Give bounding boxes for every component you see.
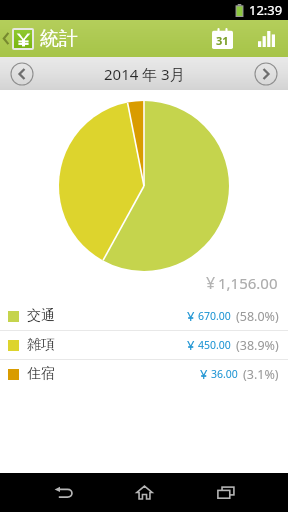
button[interactable]: Previous month	[0, 57, 44, 90]
staticText: (3.1%)	[243, 366, 279, 383]
staticText: 1,156.00	[218, 273, 278, 293]
staticText: 450.00	[198, 338, 231, 352]
button[interactable]: Statistics chart	[244, 20, 288, 57]
staticText: 住宿	[27, 365, 55, 383]
button[interactable]: 統計	[0, 20, 84, 57]
staticText: ¥	[187, 336, 195, 354]
staticText: 2014 年 3月	[104, 64, 185, 84]
button[interactable]: 交通	[0, 302, 288, 331]
staticText: (58.0%)	[236, 308, 279, 325]
staticText: 36.00	[211, 367, 238, 381]
staticText: 12:39	[249, 1, 283, 19]
staticText: ¥	[206, 272, 216, 294]
staticText: (38.9%)	[236, 337, 279, 354]
button[interactable]: Next month	[244, 57, 288, 90]
button[interactable]: 雑項	[0, 331, 288, 360]
staticText: ¥	[187, 307, 195, 325]
staticText: 31	[216, 33, 229, 48]
button[interactable]: 住宿	[0, 360, 288, 389]
staticText: ¥	[200, 365, 208, 383]
staticText: 統計	[40, 27, 78, 51]
button[interactable]: Calendar	[200, 20, 244, 57]
button[interactable]: Back	[23, 473, 104, 512]
staticText: 交通	[27, 307, 55, 325]
staticText: 雑項	[27, 336, 55, 354]
staticText: 670.00	[198, 309, 231, 323]
button[interactable]: Recent apps	[185, 473, 266, 512]
button[interactable]: Home	[104, 473, 185, 512]
